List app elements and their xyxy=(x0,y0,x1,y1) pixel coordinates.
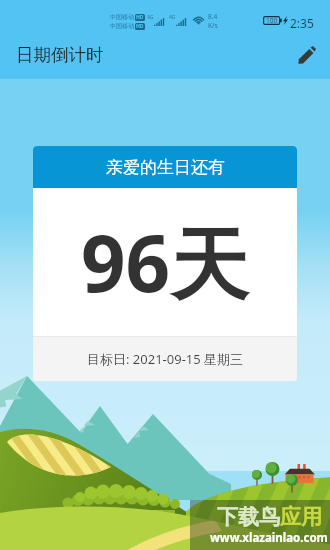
staticText: HD xyxy=(136,14,144,21)
staticText: 8.4 xyxy=(208,12,218,21)
staticText: 日期倒计时 xyxy=(16,44,104,66)
staticText: 4G xyxy=(169,14,176,21)
staticText: 中国移动 xyxy=(110,13,134,21)
staticText: 应用 xyxy=(280,504,322,530)
staticText: www.xlazainlao.com xyxy=(210,530,328,546)
staticText: HD xyxy=(136,23,144,30)
staticText: 亲爱的生日还有 xyxy=(106,157,225,178)
staticText: K/s xyxy=(208,21,218,30)
staticText: 100 xyxy=(266,16,278,25)
staticText: 目标日: 2021-09-15 星期三 xyxy=(87,350,244,368)
button[interactable]: Edit xyxy=(288,36,326,74)
staticText: 中国移动 xyxy=(110,22,134,30)
staticText: 2:35 xyxy=(290,15,314,31)
staticText: 下载鸟 xyxy=(217,504,280,530)
staticText: 4G xyxy=(147,14,154,21)
button[interactable]: 亲爱的生日还有 xyxy=(33,146,297,381)
staticText: 96天 xyxy=(81,209,249,316)
